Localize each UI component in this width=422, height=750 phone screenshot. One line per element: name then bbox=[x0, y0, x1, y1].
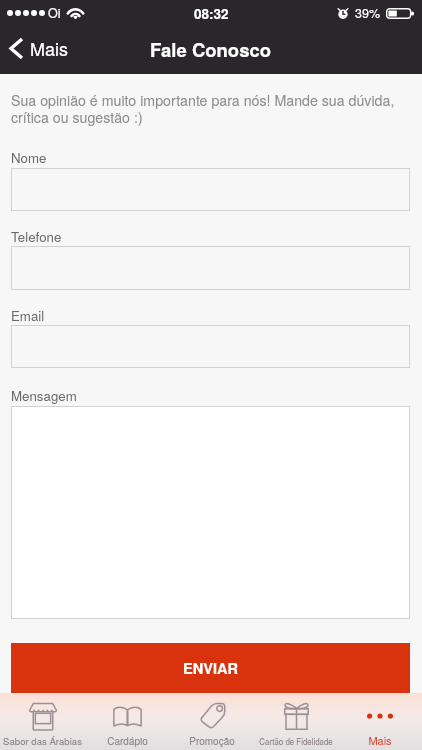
button[interactable] bbox=[11, 406, 410, 619]
staticText: Nome bbox=[11, 148, 47, 167]
staticText: Telefone bbox=[11, 227, 62, 246]
button[interactable] bbox=[11, 168, 410, 211]
staticText: Sabor das Árabias bbox=[3, 734, 82, 748]
staticText: Mais bbox=[30, 35, 68, 61]
staticText: Mais bbox=[368, 732, 392, 748]
button[interactable]: ENVIAR bbox=[11, 643, 410, 693]
staticText: ENVIAR bbox=[183, 658, 239, 679]
staticText: Promoção bbox=[189, 734, 235, 748]
button[interactable]: Sabor das Árabias bbox=[0, 693, 85, 750]
button[interactable]: Promoção bbox=[170, 693, 254, 750]
button[interactable]: Cardápio bbox=[85, 693, 170, 750]
button[interactable] bbox=[11, 325, 410, 368]
staticText: Sua opinião é muito importante para nós!… bbox=[11, 90, 403, 127]
staticText: Cardápio bbox=[107, 734, 148, 748]
button[interactable] bbox=[11, 246, 410, 290]
button[interactable]: Mais bbox=[338, 693, 422, 750]
staticText: 08:32 bbox=[194, 4, 229, 23]
staticText: Email bbox=[11, 306, 45, 325]
staticText: Oi bbox=[48, 4, 61, 22]
staticText: Fale Conosco bbox=[150, 36, 272, 62]
staticText: Cartão de Fidelidade bbox=[259, 735, 333, 748]
button[interactable]: Cartão de Fidelidade bbox=[254, 693, 338, 750]
button[interactable]: Mais bbox=[0, 30, 80, 66]
staticText: 39% bbox=[355, 4, 381, 22]
staticText: Mensagem bbox=[11, 386, 77, 405]
